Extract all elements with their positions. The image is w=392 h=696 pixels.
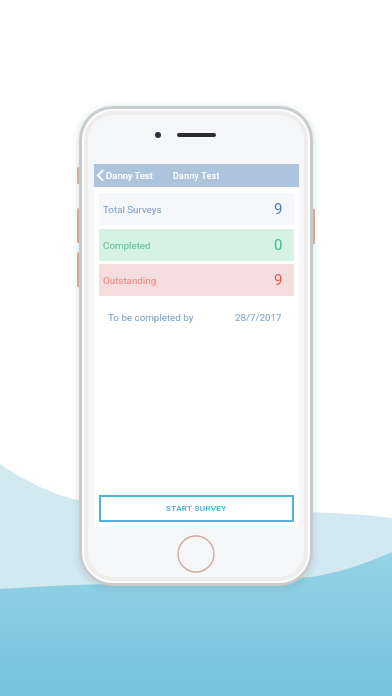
staticText: Total Surveys <box>103 204 162 215</box>
staticText: To be completed by <box>108 312 194 323</box>
staticText: 9 <box>274 200 283 218</box>
staticText: 28/7/2017 <box>235 312 282 323</box>
button[interactable]: Completed <box>99 229 294 261</box>
staticText: Danny Test <box>106 170 153 181</box>
button[interactable]: START SURVEY <box>99 495 294 522</box>
staticText: START SURVEY <box>166 504 227 513</box>
button[interactable]: Total Surveys <box>99 193 294 225</box>
staticText: Danny Test <box>173 171 220 181</box>
button[interactable]: Outstanding <box>99 264 294 296</box>
staticText: 0 <box>274 236 283 254</box>
staticText: 9 <box>274 271 283 289</box>
staticText: Completed <box>103 240 151 251</box>
staticText: Outstanding <box>103 275 157 286</box>
button[interactable]: Danny Test <box>94 167 159 184</box>
